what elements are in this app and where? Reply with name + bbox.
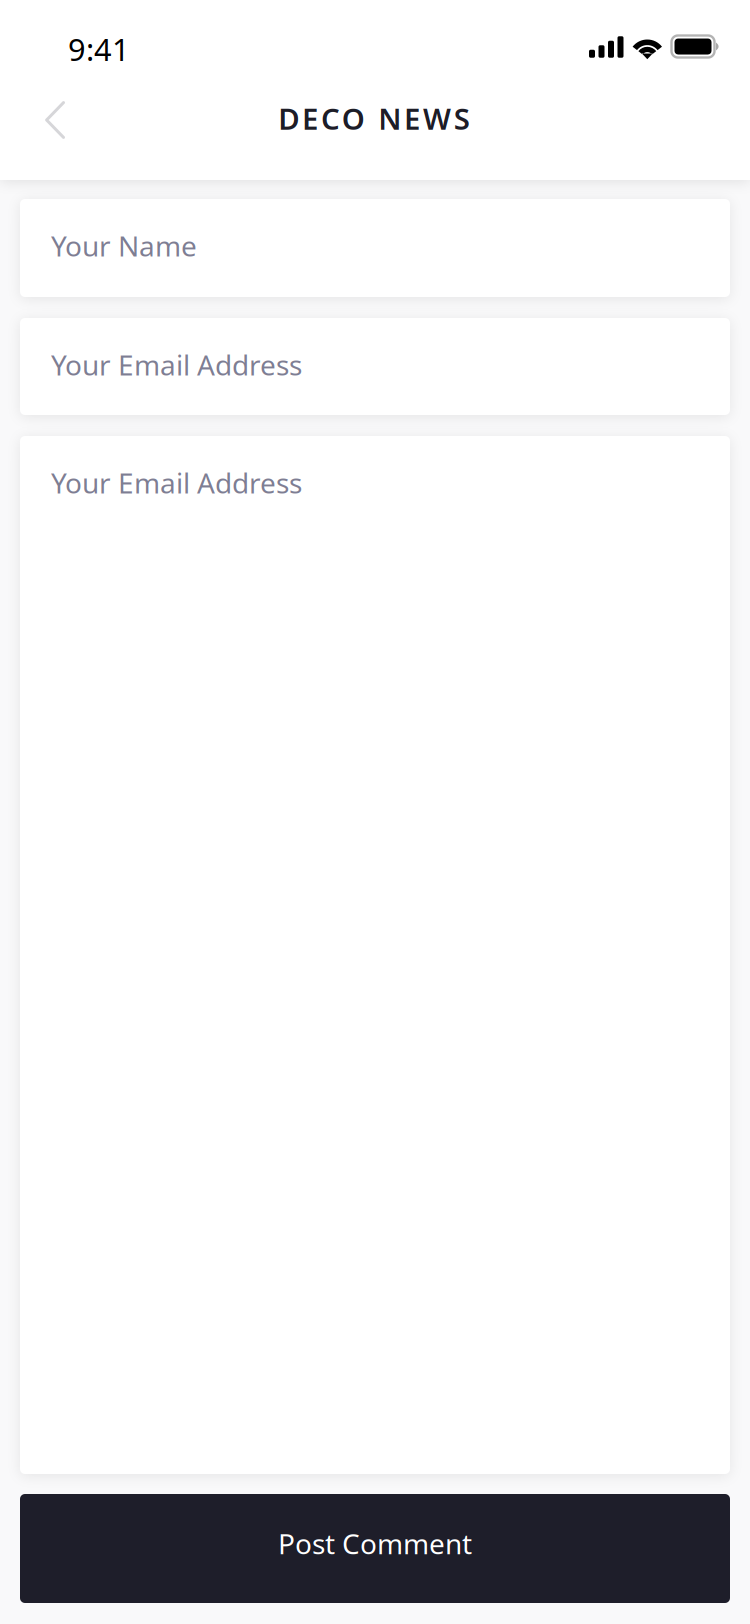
staticText: Your Email Address <box>51 346 302 383</box>
staticText: 9:41 <box>68 29 130 69</box>
staticText: Post Comment <box>278 1525 472 1562</box>
button[interactable]: Back <box>15 92 95 150</box>
staticText: Your Email Address <box>51 464 302 501</box>
button[interactable]: Your Name <box>20 199 730 297</box>
staticText: Your Name <box>51 227 197 264</box>
button[interactable]: Your Email Address <box>20 436 730 1474</box>
button[interactable]: Your Email Address <box>20 318 730 415</box>
staticText: DECO NEWS <box>278 99 470 138</box>
button[interactable]: Post Comment <box>20 1494 730 1603</box>
